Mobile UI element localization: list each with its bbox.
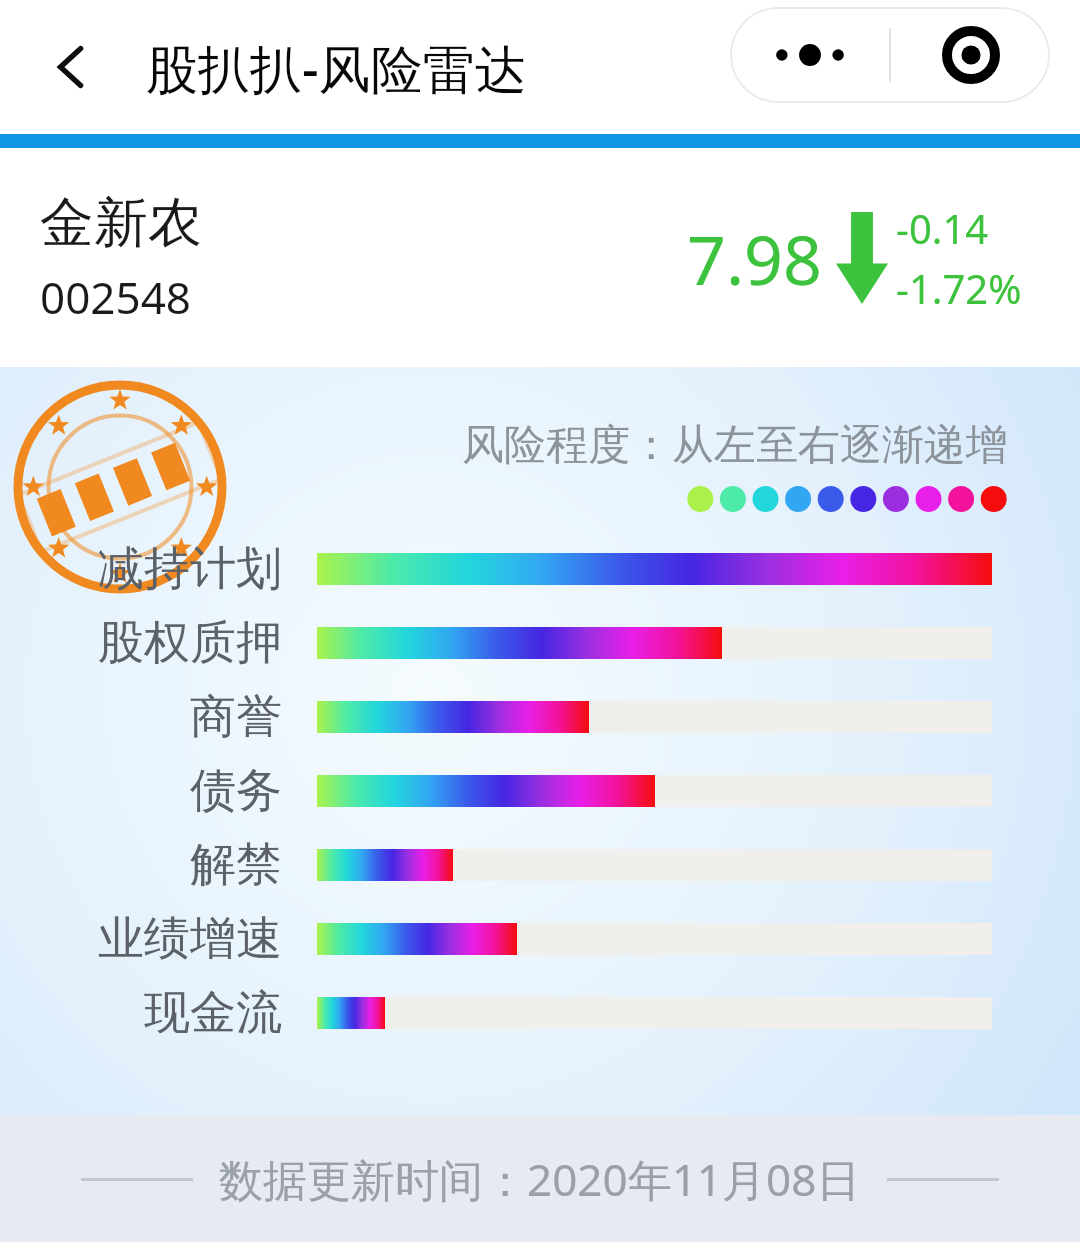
button[interactable]: More options: [730, 7, 889, 103]
staticText: 商誉: [0, 688, 282, 746]
staticText: 现金流: [0, 984, 282, 1042]
staticText: 解禁: [0, 836, 282, 894]
button[interactable]: 现金流: [0, 976, 1080, 1050]
staticText: 股扒扒-风险雷达: [146, 32, 527, 103]
staticText: 业绩增速: [0, 910, 282, 968]
staticText: 股权质押: [0, 614, 282, 672]
staticText: 数据更新时间：2020年11月08日: [219, 1149, 861, 1209]
button[interactable]: 债务: [0, 754, 1080, 828]
staticText: 风险程度：从左至右逐渐递增: [462, 419, 1008, 472]
staticText: 减持计划: [0, 540, 282, 598]
staticText: 7.98: [687, 212, 822, 305]
staticText: 002548: [40, 267, 192, 327]
button[interactable]: 股权质押: [0, 606, 1080, 680]
staticText: 债务: [0, 762, 282, 820]
button[interactable]: 业绩增速: [0, 902, 1080, 976]
staticText: -0.14: [896, 201, 989, 255]
button[interactable]: 解禁: [0, 828, 1080, 902]
staticText: -1.72%: [896, 261, 1022, 315]
button[interactable]: Close: [891, 7, 1050, 103]
button[interactable]: Back: [36, 32, 106, 102]
staticText: 金新农: [40, 189, 202, 257]
button[interactable]: 商誉: [0, 680, 1080, 754]
button[interactable]: 减持计划: [0, 532, 1080, 606]
